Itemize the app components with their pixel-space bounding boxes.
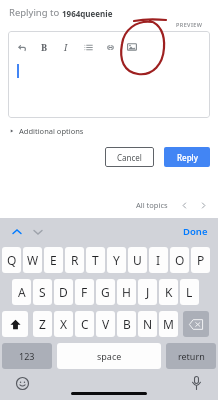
button[interactable]: J xyxy=(138,279,157,305)
button[interactable]: F xyxy=(75,279,94,305)
staticText: G xyxy=(101,284,110,300)
staticText: O xyxy=(175,252,185,268)
staticText: R xyxy=(71,252,79,268)
staticText: 1964queenie xyxy=(62,8,113,19)
button[interactable]: Y xyxy=(107,247,126,273)
button[interactable]: Bulleted list xyxy=(81,40,95,54)
staticText: All topics xyxy=(136,200,168,210)
button[interactable]: B xyxy=(117,311,136,337)
staticText: A xyxy=(18,284,26,300)
staticText: P xyxy=(197,252,205,268)
staticText: B xyxy=(41,41,48,53)
staticText: space xyxy=(97,350,122,362)
staticText: N xyxy=(143,316,153,332)
button[interactable]: Z xyxy=(33,311,52,337)
button[interactable]: Insert link xyxy=(103,40,117,54)
button[interactable]: Next topic xyxy=(198,200,208,210)
button[interactable]: Additional options xyxy=(8,124,84,138)
button[interactable]: A xyxy=(12,279,31,305)
button[interactable]: L xyxy=(180,279,199,305)
staticText: Q xyxy=(7,252,17,268)
button[interactable]: Emoji xyxy=(14,375,30,391)
staticText: Done xyxy=(183,225,208,238)
button[interactable]: Reply xyxy=(164,147,210,167)
button[interactable]: U xyxy=(128,247,147,273)
staticText: Reply xyxy=(177,152,198,163)
staticText: V xyxy=(102,316,110,332)
staticText: Y xyxy=(113,252,120,268)
button[interactable]: Next field xyxy=(31,225,45,239)
button[interactable]: G xyxy=(96,279,115,305)
staticText: Replying to xyxy=(9,6,62,19)
button[interactable]: S xyxy=(33,279,52,305)
button[interactable]: O xyxy=(170,247,189,273)
button[interactable]: H xyxy=(117,279,136,305)
staticText: PREVIEW xyxy=(176,21,203,28)
button[interactable]: P xyxy=(191,247,210,273)
button[interactable]: V xyxy=(96,311,115,337)
button[interactable]: I xyxy=(149,247,168,273)
button[interactable]: Previous field xyxy=(10,225,24,239)
staticText: 123 xyxy=(19,350,35,362)
button[interactable]: space xyxy=(57,343,161,369)
button[interactable]: W xyxy=(23,247,42,273)
staticText: D xyxy=(59,284,68,300)
button[interactable]: Bold xyxy=(37,40,51,54)
button[interactable]: E xyxy=(44,247,63,273)
button[interactable]: return xyxy=(166,343,216,369)
button[interactable]: Cancel xyxy=(105,147,154,167)
staticText: E xyxy=(50,252,57,268)
button[interactable]: Italic xyxy=(59,40,73,54)
button[interactable]: Insert image xyxy=(125,40,139,54)
button[interactable]: M xyxy=(159,311,178,337)
staticText: S xyxy=(39,284,46,300)
staticText: T xyxy=(92,252,99,268)
button[interactable]: K xyxy=(159,279,178,305)
staticText: U xyxy=(133,252,142,268)
staticText: X xyxy=(60,316,68,332)
button[interactable]: R xyxy=(65,247,84,273)
staticText: I xyxy=(64,41,68,53)
button[interactable]: C xyxy=(75,311,94,337)
button[interactable]: N xyxy=(138,311,157,337)
button[interactable]: T xyxy=(86,247,105,273)
staticText: J xyxy=(146,284,150,300)
button[interactable]: Done xyxy=(183,225,208,238)
button[interactable]: Undo xyxy=(15,40,29,54)
staticText: M xyxy=(163,316,174,332)
button[interactable]: All topics xyxy=(136,200,168,210)
staticText: H xyxy=(122,284,131,300)
button[interactable]: 123 xyxy=(2,343,52,369)
button[interactable]: Previous topic xyxy=(179,200,189,210)
button[interactable]: Dictation xyxy=(188,375,204,391)
button[interactable]: D xyxy=(54,279,73,305)
staticText: L xyxy=(186,284,193,300)
staticText: Z xyxy=(39,316,46,332)
button[interactable]: X xyxy=(54,311,73,337)
staticText: B xyxy=(123,316,131,332)
staticText: K xyxy=(165,284,173,300)
staticText: C xyxy=(81,316,89,332)
staticText: F xyxy=(81,284,88,300)
button[interactable]: Shift xyxy=(2,311,28,337)
staticText: W xyxy=(27,252,39,268)
staticText: I xyxy=(156,252,161,268)
staticText: Additional options xyxy=(19,126,84,136)
staticText: return xyxy=(178,350,205,362)
staticText: Cancel xyxy=(117,152,142,163)
button[interactable]: Q xyxy=(2,247,21,273)
button[interactable]: Backspace xyxy=(183,311,209,337)
